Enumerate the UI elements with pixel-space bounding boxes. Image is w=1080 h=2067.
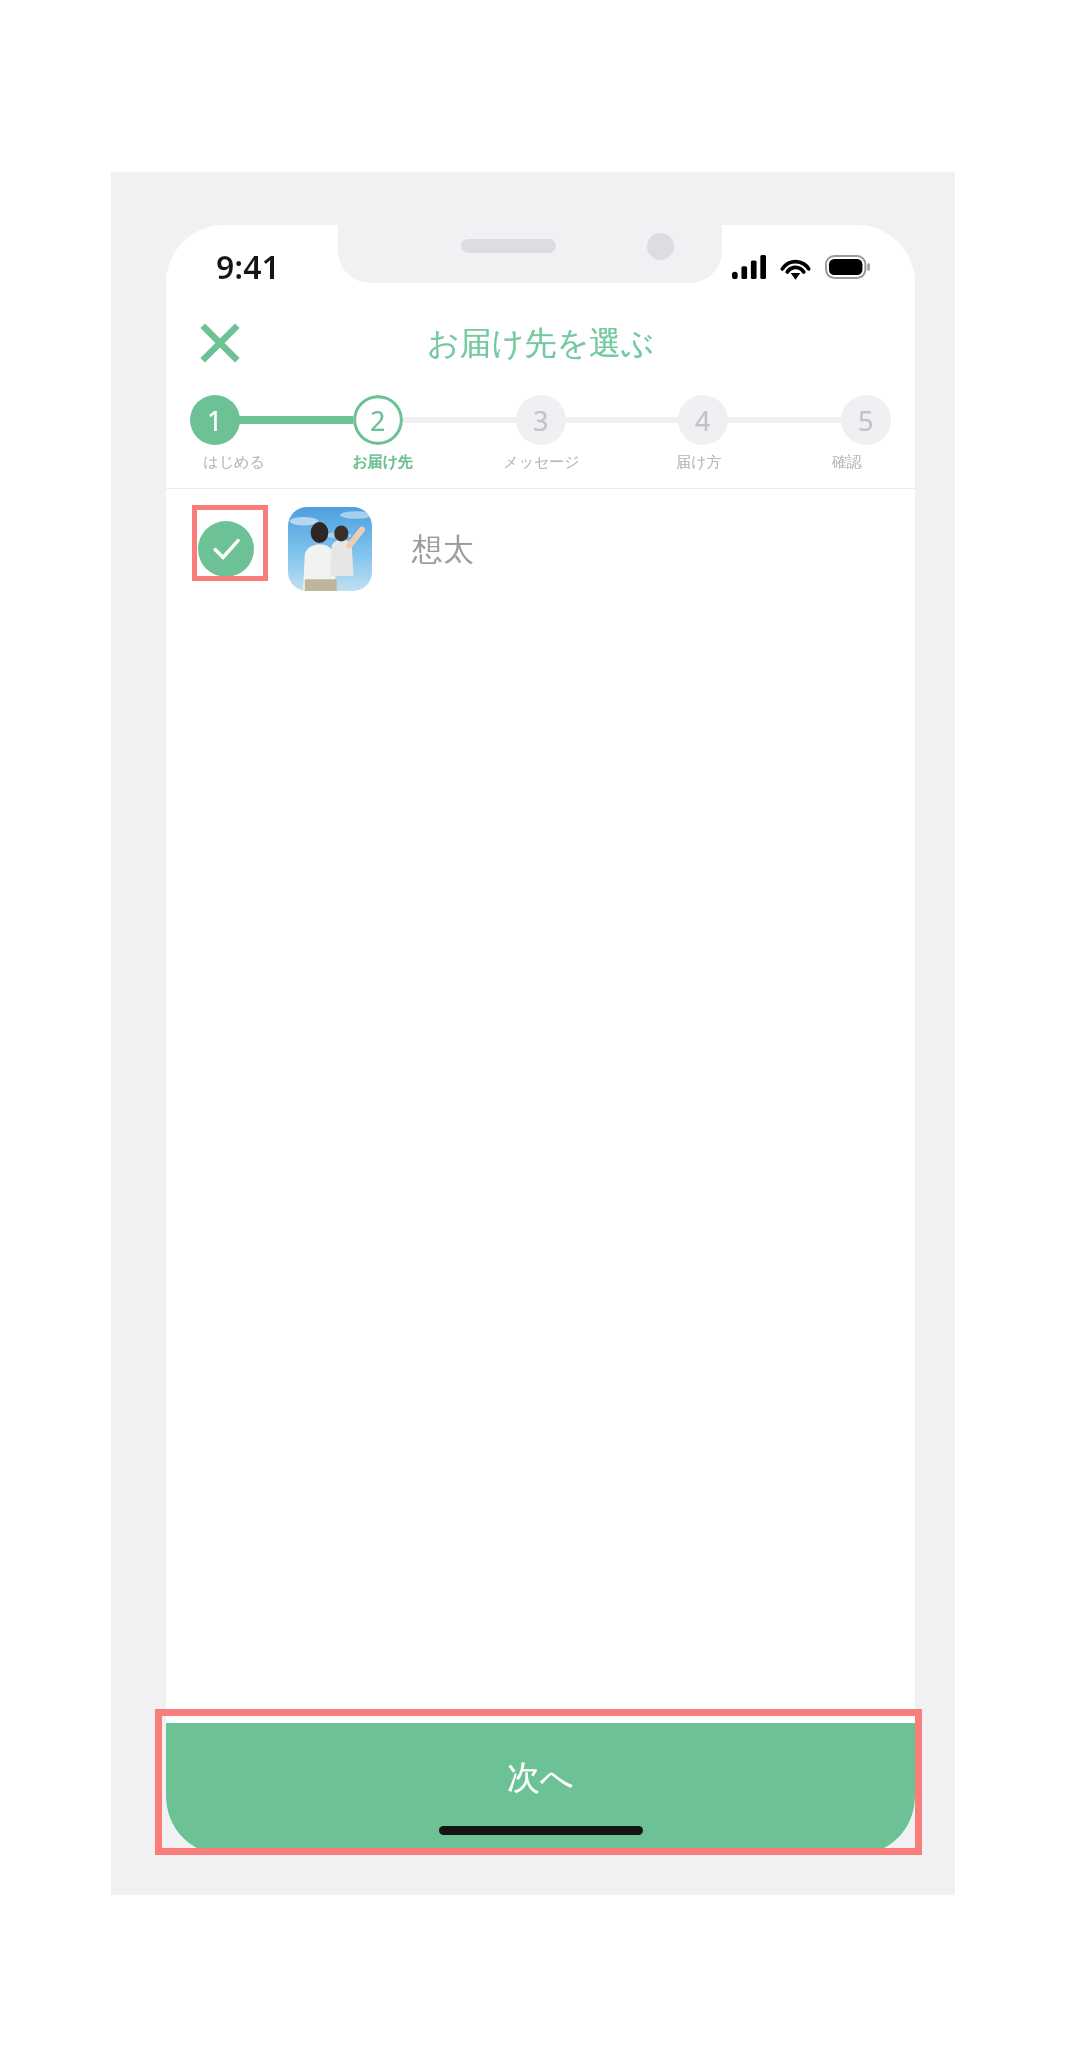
button[interactable]: 閉じる	[188, 311, 252, 375]
button[interactable]: 想太	[166, 489, 915, 609]
button[interactable]: 4	[678, 395, 728, 445]
button[interactable]: 3	[516, 395, 566, 445]
staticText: 3	[533, 402, 549, 439]
staticText: 4	[695, 402, 711, 439]
button[interactable]: 2	[353, 395, 403, 445]
staticText: 2	[370, 402, 386, 439]
button[interactable]: 次へ	[166, 1723, 915, 1855]
staticText: お届け先を選ぶ	[427, 323, 654, 363]
button[interactable]: 1	[190, 395, 240, 445]
staticText: 想太	[412, 530, 474, 569]
staticText: 9:41	[216, 245, 280, 289]
staticText: 次へ	[507, 1757, 574, 1799]
button[interactable]: 5	[841, 395, 891, 445]
staticText: はじめる	[203, 453, 265, 472]
staticText: お届け先	[352, 453, 413, 472]
staticText: 1	[207, 402, 223, 439]
staticText: 確認	[832, 453, 862, 472]
staticText: 届け方	[676, 453, 722, 472]
staticText: メッセージ	[503, 453, 580, 472]
staticText: 5	[858, 402, 874, 439]
